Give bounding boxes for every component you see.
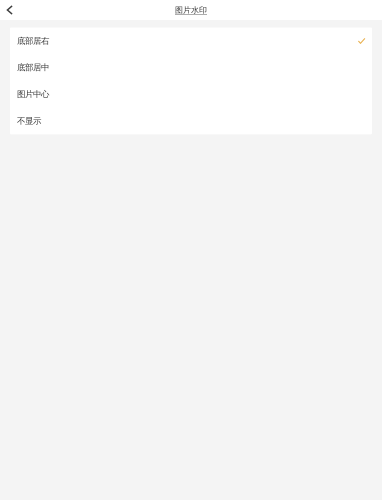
- button[interactable]: 不显示: [10, 108, 372, 134]
- staticText: 底部居中: [17, 62, 49, 73]
- staticText: 图片中心: [17, 89, 49, 100]
- button[interactable]: Back: [0, 0, 26, 20]
- button[interactable]: 底部居中: [10, 54, 372, 81]
- staticText: 不显示: [17, 116, 41, 126]
- button[interactable]: 底部居右: [10, 27, 372, 54]
- button[interactable]: 图片中心: [10, 81, 372, 108]
- staticText: 图片水印: [175, 5, 207, 15]
- staticText: 底部居右: [17, 35, 49, 46]
